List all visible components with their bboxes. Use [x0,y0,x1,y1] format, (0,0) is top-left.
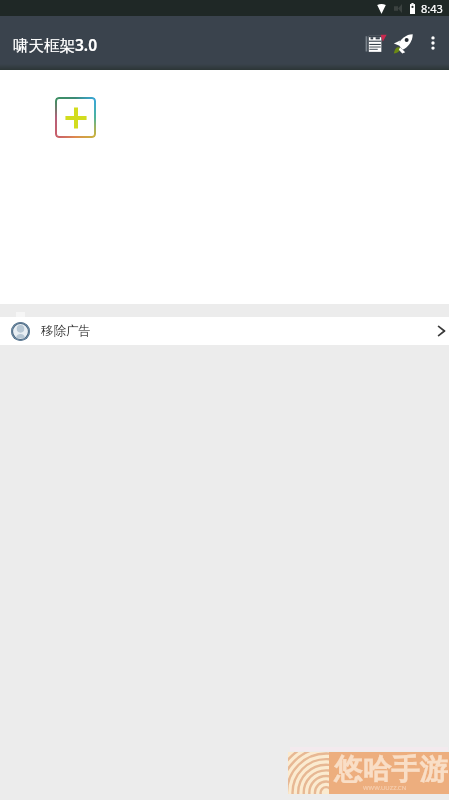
button[interactable]: More options [418,23,447,63]
button[interactable]: Add [55,97,96,138]
button[interactable]: News [360,23,389,63]
staticText: 悠哈手游 [334,752,448,788]
staticText: WWW.UUZZ.CN [363,784,407,792]
button[interactable]: Rocket [389,23,418,63]
button[interactable]: 移除广告 [0,317,449,345]
staticText: 啸天框架3.0 [13,34,98,55]
staticText: 8:43 [421,1,443,16]
staticText: 移除广告 [41,323,91,339]
